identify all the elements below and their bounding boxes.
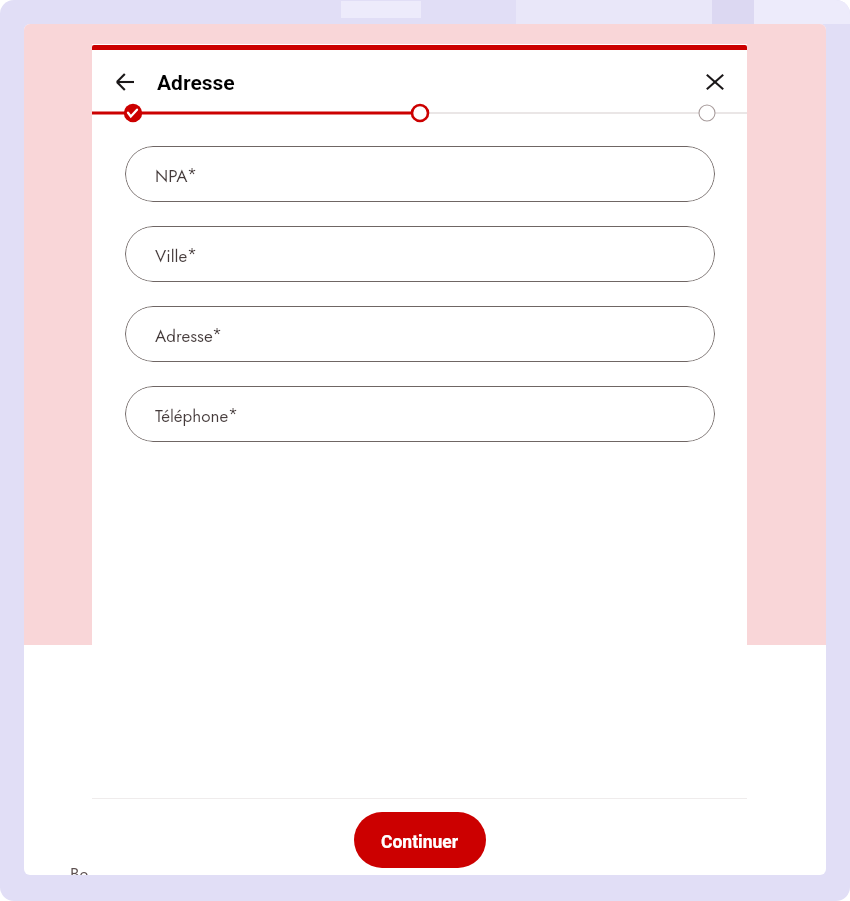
- button[interactable]: Adresse: [125, 306, 715, 362]
- staticText: Ville: [155, 244, 188, 269]
- staticText: *: [228, 402, 239, 427]
- staticText: Adresse: [155, 324, 213, 349]
- staticText: NPA: [155, 164, 188, 189]
- staticText: *: [187, 162, 198, 187]
- staticText: Adresse: [157, 71, 235, 96]
- staticText: Be: [70, 862, 89, 875]
- button[interactable]: Close: [694, 61, 736, 103]
- button[interactable]: Téléphone: [125, 386, 715, 442]
- staticText: Téléphone: [155, 404, 229, 429]
- staticText: *: [212, 322, 223, 347]
- staticText: *: [187, 242, 198, 267]
- button[interactable]: Ville: [125, 226, 715, 282]
- staticText: Continuer: [381, 832, 459, 853]
- button[interactable]: Back: [104, 61, 146, 103]
- button[interactable]: NPA: [125, 146, 715, 202]
- button[interactable]: Continuer: [354, 812, 486, 868]
